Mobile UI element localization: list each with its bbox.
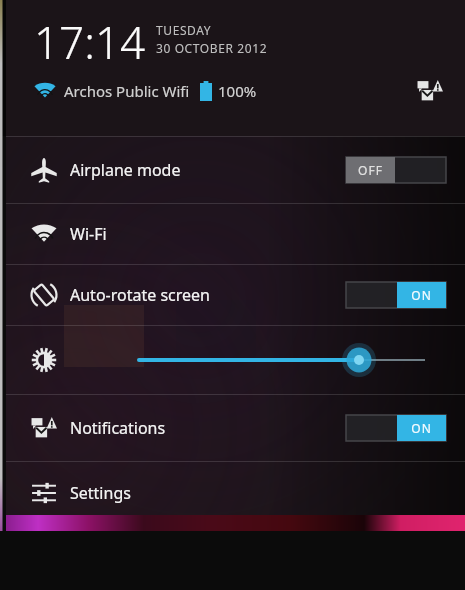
staticText: 17:14 (34, 12, 146, 72)
button[interactable]: Toggle on (346, 415, 446, 441)
staticText: Wi-Fi (70, 223, 107, 245)
button[interactable]: Toggle off (346, 157, 446, 183)
button[interactable]: Wi-Fi (6, 204, 465, 264)
staticText: Auto-rotate screen (70, 284, 210, 306)
staticText: TUESDAY (156, 22, 212, 38)
button[interactable]: Toggle on (346, 282, 446, 308)
button[interactable]: Auto-rotate screen (6, 265, 465, 325)
staticText: ON (397, 420, 446, 436)
button[interactable]: Notifications (6, 395, 465, 461)
other: Brightness (28, 344, 60, 376)
staticText: Settings (70, 482, 131, 504)
button[interactable]: Airplane mode (6, 137, 465, 203)
staticText: 30 OCTOBER 2012 (156, 40, 268, 56)
staticText: OFF (346, 162, 395, 178)
staticText: ON (397, 287, 446, 303)
staticText: Airplane mode (70, 159, 181, 181)
button[interactable]: Brightness (6, 326, 465, 394)
staticText: 100% (218, 81, 257, 101)
button[interactable]: Settings (6, 462, 465, 523)
button[interactable]: Notifications (413, 74, 447, 108)
staticText: Archos Public Wifi (64, 81, 190, 101)
staticText: Notifications (70, 417, 166, 439)
